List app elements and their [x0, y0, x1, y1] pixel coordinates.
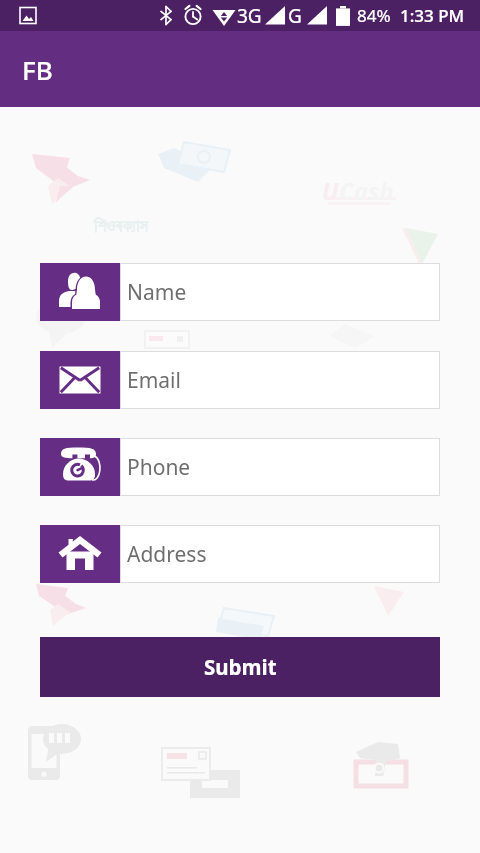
staticText: Address: [127, 540, 207, 569]
staticText: শিওৰক্যাস: [94, 218, 148, 235]
staticText: 84%: [357, 4, 391, 27]
staticText: 1:33 PM: [400, 4, 465, 27]
other: Phone field: [40, 438, 120, 496]
staticText: FB: [22, 52, 53, 87]
staticText: Email: [127, 366, 181, 395]
staticText: Cash: [339, 174, 394, 207]
staticText: 3G: [237, 3, 262, 29]
button[interactable]: Submit: [40, 637, 440, 697]
staticText: G: [288, 3, 302, 29]
other: Email field: [40, 351, 120, 409]
button[interactable]: Phone field: [40, 438, 440, 496]
other: Name field: [40, 263, 120, 321]
staticText: Phone: [127, 453, 191, 482]
staticText: Submit: [204, 653, 277, 681]
button[interactable]: Email field: [40, 351, 440, 409]
button[interactable]: Name field: [40, 263, 440, 321]
staticText: Name: [127, 278, 187, 307]
button[interactable]: Address field: [40, 525, 440, 583]
other: Address field: [40, 525, 120, 583]
staticText: U: [322, 174, 339, 207]
